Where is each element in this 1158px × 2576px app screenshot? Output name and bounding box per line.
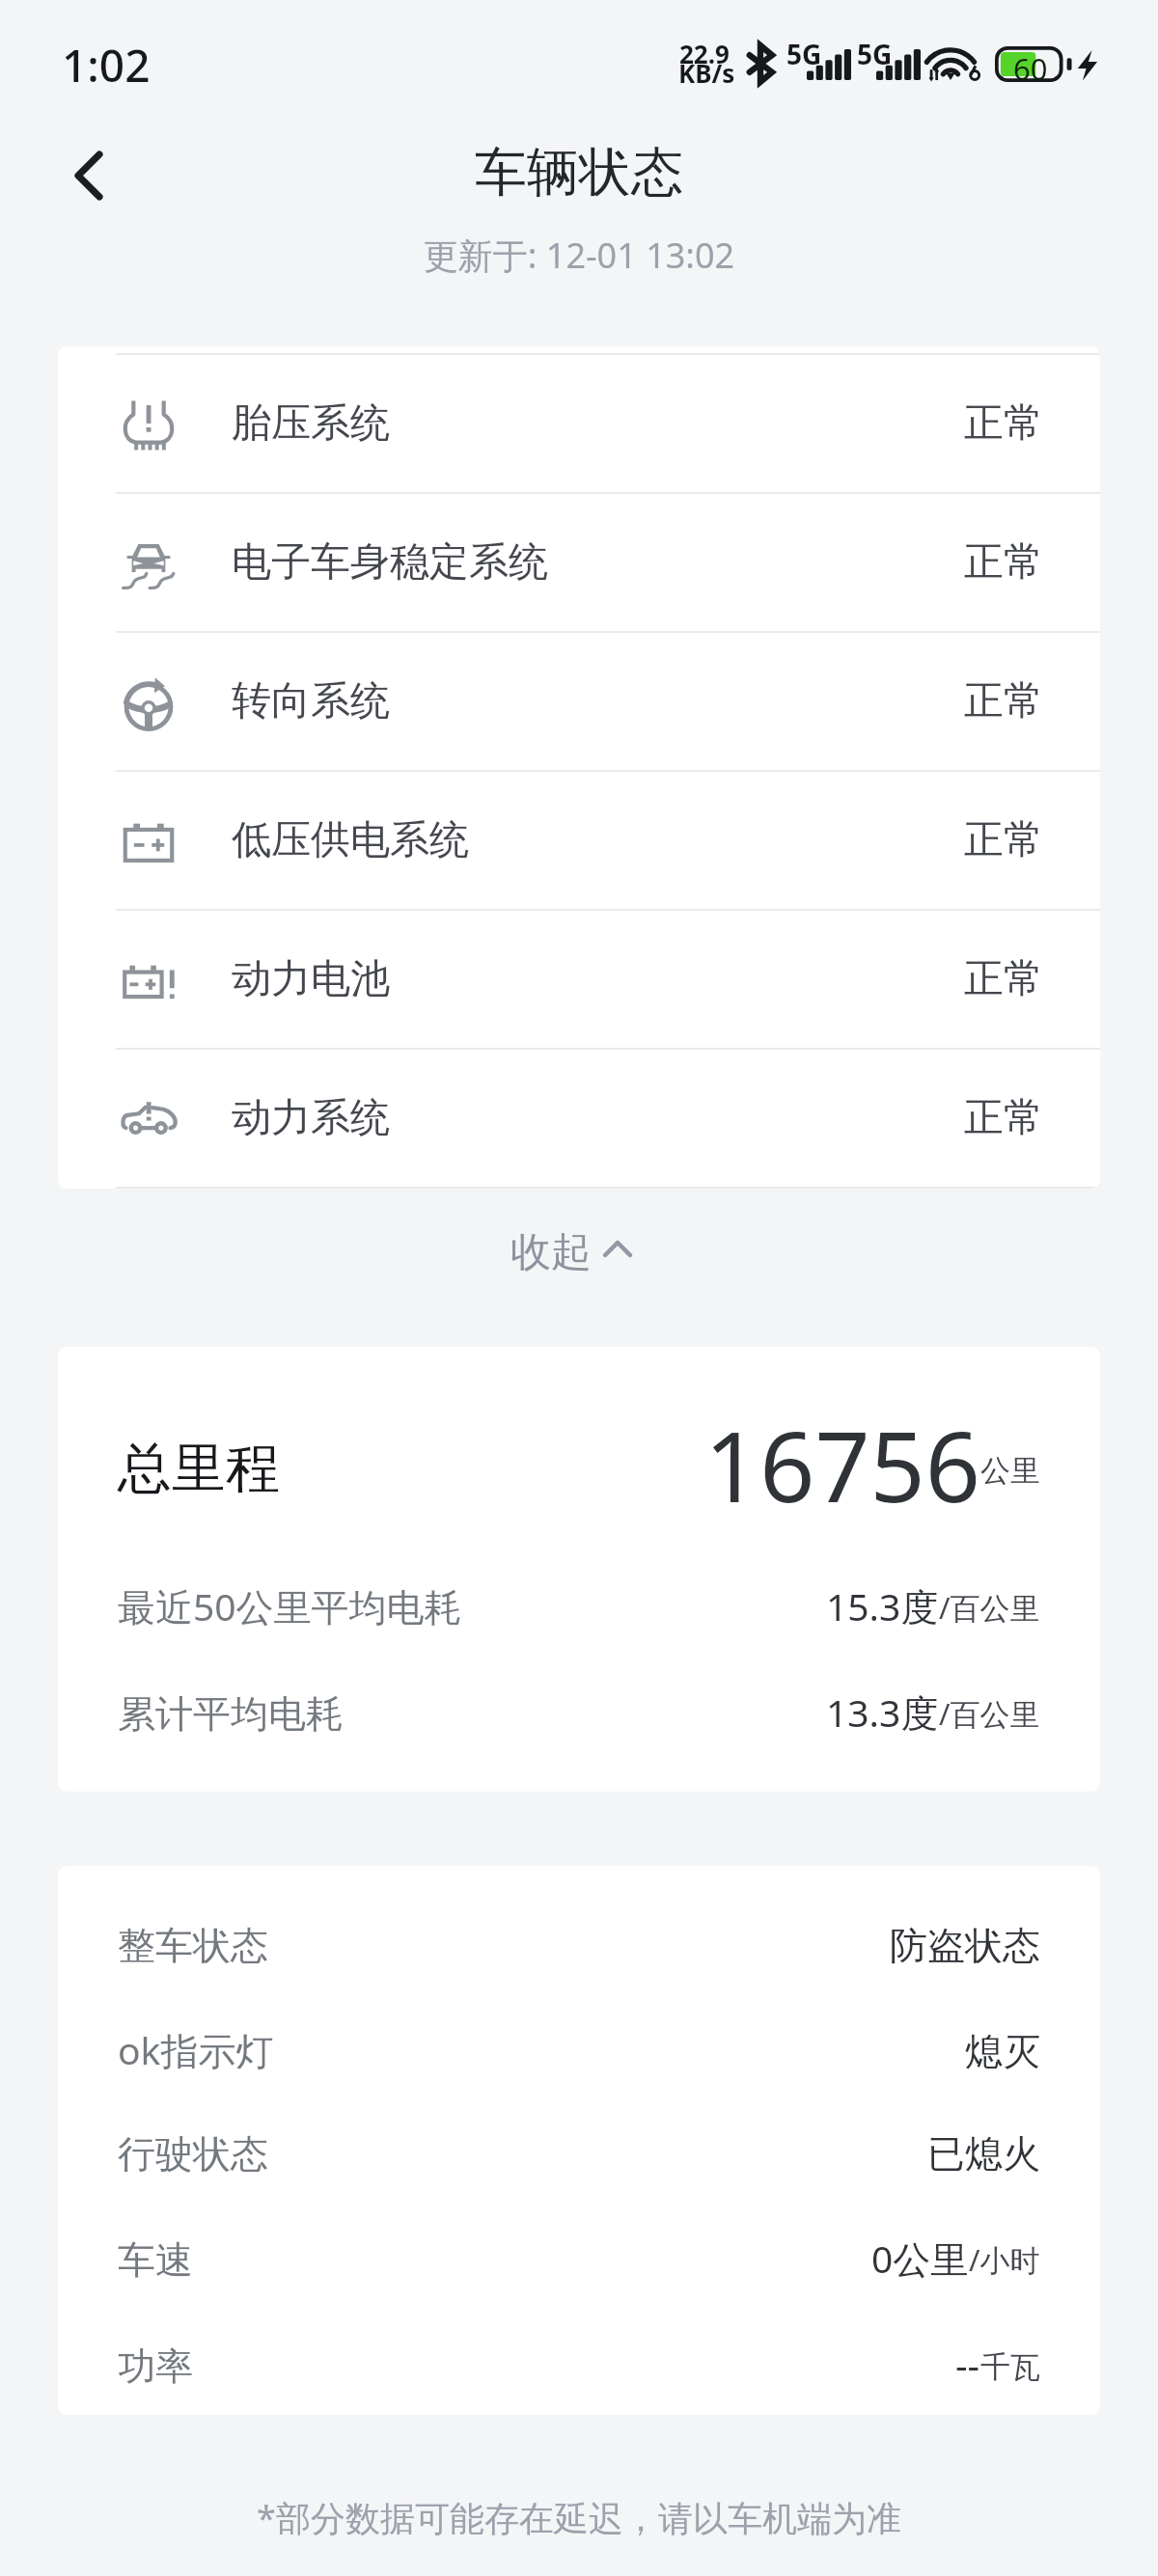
button[interactable]: 收起 [476, 1208, 665, 1298]
staticText: 最近50公里平均电耗 [118, 1580, 462, 1631]
staticText: 正常 [964, 815, 1043, 865]
staticText: 已熄火 [927, 2130, 1040, 2178]
button[interactable]: 电子车身稳定系统 [58, 494, 1100, 631]
staticText: 千瓦 [980, 2348, 1040, 2386]
staticText: 防盗状态 [890, 1922, 1040, 1969]
staticText: 16756 [704, 1399, 980, 1511]
staticText: 动力电池 [232, 954, 390, 1004]
staticText: 电子车身稳定系统 [232, 537, 548, 588]
staticText: *部分数据可能存在延迟，请以车机端为准 [0, 2494, 1158, 2541]
staticText: 低压供电系统 [232, 815, 469, 865]
staticText: 功率 [118, 2343, 193, 2390]
staticText: 正常 [964, 954, 1043, 1004]
button[interactable]: 动力系统 [58, 1050, 1100, 1187]
staticText: 正常 [964, 537, 1043, 588]
staticText: 总里程 [118, 1435, 280, 1503]
staticText: 胎压系统 [232, 398, 390, 449]
staticText: /百公里 [939, 1693, 1040, 1734]
button[interactable]: 动力电池 [58, 911, 1100, 1048]
staticText: -- [955, 2339, 980, 2390]
staticText: 熄灭 [965, 2028, 1040, 2075]
staticText: /小时 [969, 2239, 1040, 2280]
button[interactable]: Back [44, 131, 133, 220]
button[interactable]: 转向系统 [58, 633, 1100, 770]
staticText: 车辆状态 [0, 140, 1158, 206]
staticText: 0公里 [871, 2233, 969, 2284]
staticText: KB/s [678, 56, 735, 90]
staticText: 转向系统 [232, 676, 390, 726]
staticText: 60 [1013, 48, 1048, 89]
staticText: 1:02 [62, 35, 151, 96]
staticText: 15.3度 [826, 1580, 939, 1631]
staticText: 正常 [964, 676, 1043, 726]
staticText: 正常 [964, 1093, 1043, 1143]
button[interactable]: 低压供电系统 [58, 772, 1100, 909]
staticText: 5G [786, 36, 822, 72]
staticText: 正常 [964, 398, 1043, 449]
staticText: 公里 [980, 1452, 1040, 1490]
staticText: 13.3度 [826, 1686, 939, 1738]
staticText: 5G [857, 36, 893, 72]
staticText: 行驶状态 [118, 2130, 268, 2178]
staticText: 动力系统 [232, 1093, 390, 1143]
staticText: 累计平均电耗 [118, 1690, 344, 1738]
staticText: 更新于: 12-01 13:02 [0, 232, 1158, 279]
staticText: 收起 [510, 1227, 592, 1278]
staticText: 车速 [118, 2236, 193, 2284]
staticText: /百公里 [939, 1587, 1040, 1628]
button[interactable]: 胎压系统 [58, 355, 1100, 492]
staticText: ok指示灯 [118, 2024, 274, 2075]
staticText: 整车状态 [118, 1922, 268, 1969]
staticText: 22.9 [679, 37, 730, 70]
